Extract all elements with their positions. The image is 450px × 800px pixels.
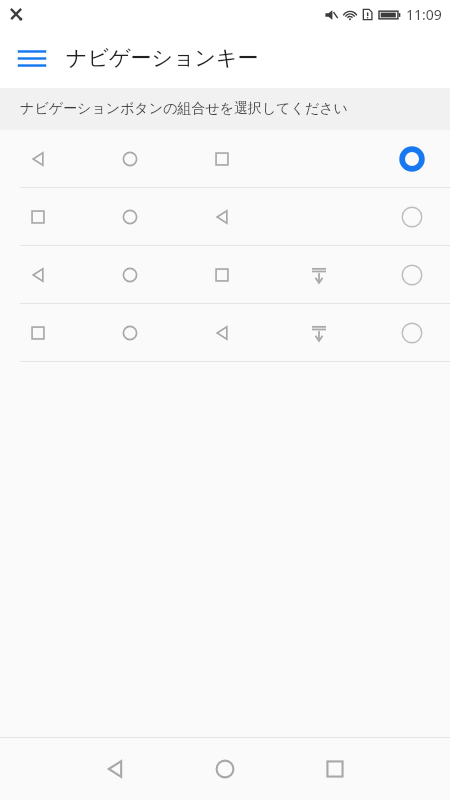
button[interactable]: Recent apps [280, 738, 390, 800]
staticText: 11:09 [406, 5, 442, 24]
button[interactable]: Menu [10, 36, 54, 80]
button[interactable] [0, 304, 450, 362]
staticText: ナビゲーションボタンの組合せを選択してください [20, 100, 348, 118]
button[interactable]: Home [170, 738, 280, 800]
staticText: ナビゲーションキー [66, 45, 259, 71]
button[interactable] [0, 188, 450, 246]
button[interactable]: Back [60, 738, 170, 800]
button[interactable] [0, 246, 450, 304]
button[interactable] [0, 130, 450, 188]
